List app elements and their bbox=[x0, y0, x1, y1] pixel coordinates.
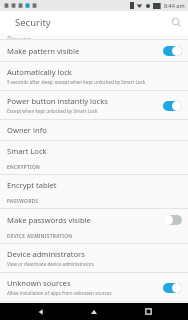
staticText: Encrypt tablet bbox=[7, 180, 57, 190]
staticText: Smart Lock bbox=[7, 146, 47, 156]
staticText: Allow installation of apps from unknown … bbox=[7, 290, 112, 296]
staticText: View or deactivate device administrators bbox=[7, 261, 95, 267]
button[interactable]: Encrypt tablet bbox=[0, 175, 188, 195]
button[interactable]: Home bbox=[81, 303, 107, 320]
button[interactable]: Automatically lock bbox=[0, 62, 188, 90]
button[interactable]: Power bbox=[0, 34, 188, 39]
staticText: 5 seconds after sleep, except when kept … bbox=[7, 79, 146, 85]
button[interactable]: Toggle on bbox=[163, 45, 182, 56]
button[interactable]: Power button instantly locks bbox=[0, 91, 188, 119]
staticText: Owner info bbox=[7, 125, 47, 135]
staticText: Unknown sources bbox=[7, 278, 71, 288]
button[interactable]: Unknown sources bbox=[0, 273, 188, 301]
button[interactable]: Toggle on bbox=[163, 100, 182, 111]
staticText: ENCRYPTION bbox=[7, 164, 41, 171]
staticText: Security bbox=[15, 16, 51, 29]
button[interactable]: Back bbox=[28, 303, 54, 320]
button[interactable]: Toggle off bbox=[163, 214, 182, 225]
staticText: Make passwords visible bbox=[7, 215, 91, 225]
button[interactable]: Device administrators bbox=[0, 244, 188, 272]
button[interactable]: Make passwords visible bbox=[0, 209, 188, 230]
staticText: PASSWORDS bbox=[7, 198, 39, 205]
staticText: Make pattern visible bbox=[7, 46, 80, 56]
staticText: Except when kept unlocked by Smart Lock bbox=[7, 108, 98, 114]
staticText: Device administrators bbox=[7, 249, 85, 259]
button[interactable]: Smart Lock bbox=[0, 141, 188, 161]
staticText: Power bbox=[7, 34, 31, 39]
staticText: Power button instantly locks bbox=[7, 96, 108, 106]
button[interactable]: Search bbox=[165, 11, 188, 34]
button[interactable]: Owner info bbox=[0, 120, 188, 140]
staticText: DEVICE ADMINISTRATION bbox=[7, 233, 73, 240]
staticText: 8:44 am bbox=[164, 2, 185, 9]
button[interactable]: Recents bbox=[135, 303, 161, 320]
staticText: Automatically lock bbox=[7, 67, 72, 77]
button[interactable]: Make pattern visible bbox=[0, 40, 188, 61]
button[interactable]: Toggle on bbox=[163, 282, 182, 293]
